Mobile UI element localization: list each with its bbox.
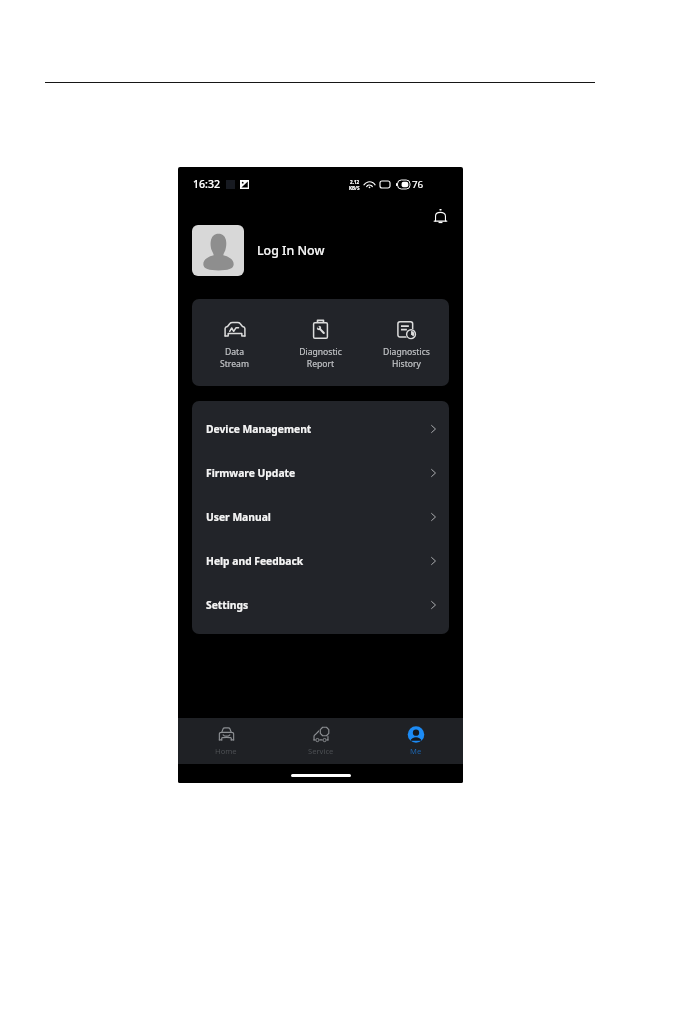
button[interactable]: Home	[178, 718, 273, 764]
staticText: Diagnostic Report	[299, 346, 342, 369]
button[interactable]: Log In Now	[192, 225, 449, 276]
button[interactable]: Diagnostic Report	[277, 299, 363, 386]
button[interactable]: Device Management	[192, 407, 449, 451]
button[interactable]: Data Stream	[192, 299, 277, 386]
button[interactable]: Settings	[192, 583, 449, 627]
button[interactable]: Service	[273, 718, 368, 764]
button[interactable]: User Manual	[192, 495, 449, 539]
staticText: 76	[412, 178, 424, 191]
staticText: Home	[215, 746, 237, 756]
staticText: User Manual	[206, 510, 271, 524]
staticText: Data Stream	[220, 346, 249, 369]
staticText: 2.12	[350, 179, 360, 185]
staticText: Device Management	[206, 422, 312, 436]
button[interactable]: Firmware Update	[192, 451, 449, 495]
staticText: Help and Feedback	[206, 554, 304, 568]
staticText: Firmware Update	[206, 466, 296, 480]
staticText: Me	[410, 746, 422, 756]
button[interactable]: Diagnostics History	[363, 299, 449, 386]
staticText: Diagnostics History	[383, 346, 430, 369]
button[interactable]: Me	[368, 718, 463, 764]
staticText: Log In Now	[257, 242, 325, 259]
staticText: 16:32	[193, 177, 221, 191]
button[interactable]: Notifications	[428, 204, 452, 228]
staticText: Service	[308, 746, 334, 756]
button[interactable]: Help and Feedback	[192, 539, 449, 583]
staticText: KB/S	[349, 185, 360, 191]
staticText: Settings	[206, 598, 249, 612]
